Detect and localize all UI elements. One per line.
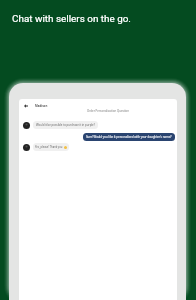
staticText: Madison <box>35 104 48 108</box>
staticText: Order Personalization Question <box>87 109 130 113</box>
button[interactable]: Would it be possible to purchase it in p… <box>23 121 98 129</box>
button[interactable]: Sure! Would you like it personalized wit… <box>83 133 175 141</box>
other: Back <box>23 103 29 109</box>
button[interactable]: Yes, please! Thank you <box>23 143 69 151</box>
staticText: Yes, please! Thank you <box>35 145 63 149</box>
staticText: Would it be possible to purchase it in p… <box>36 123 95 127</box>
staticText: Sure! Would you like it personalized wit… <box>86 135 172 139</box>
button[interactable]: Back <box>23 101 48 111</box>
staticText: Chat with sellers on the go. <box>12 13 131 25</box>
